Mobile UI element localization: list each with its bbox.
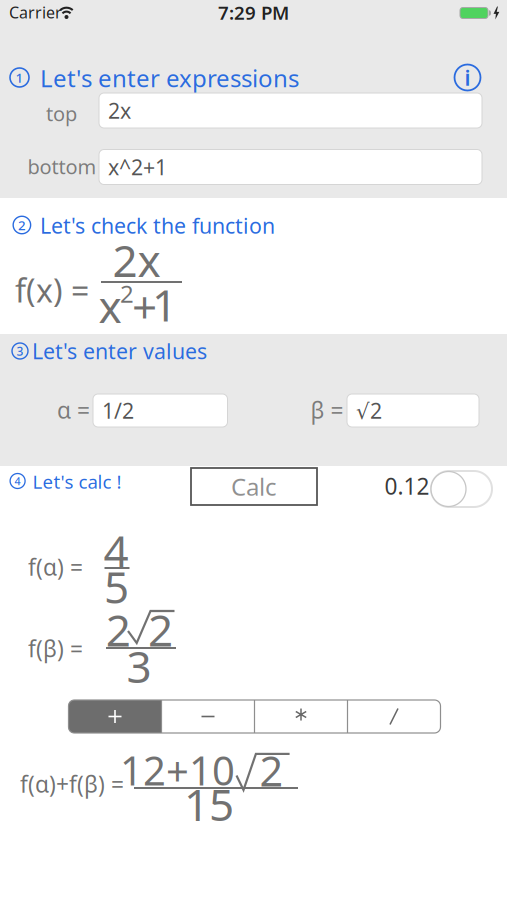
button[interactable]: Add	[68, 700, 161, 733]
staticText: α =	[57, 395, 90, 425]
staticText: Let's calc !	[32, 469, 121, 494]
staticText: 3	[126, 637, 151, 695]
button[interactable]: Decimal result	[431, 471, 492, 507]
staticText: +	[132, 277, 157, 336]
staticText: 15	[184, 775, 234, 833]
button[interactable]: Info	[454, 64, 481, 91]
staticText: f(x) =	[15, 269, 89, 311]
staticText: 4	[15, 474, 21, 488]
staticText: f(α) =	[28, 552, 83, 582]
staticText: 4	[103, 521, 128, 580]
button[interactable]: x^2+1	[99, 149, 482, 184]
staticText: i	[464, 63, 470, 92]
staticText: 0.12	[384, 471, 429, 501]
staticText: 2	[148, 600, 173, 659]
button[interactable]: 2x	[99, 93, 482, 128]
staticText: f(β) =	[28, 633, 83, 663]
staticText: 12+10	[120, 743, 235, 796]
staticText: bottom	[27, 153, 96, 180]
button[interactable]: Divide	[347, 700, 440, 733]
staticText: Calc	[231, 471, 277, 502]
button[interactable]: 1/2	[93, 394, 227, 427]
staticText: 2	[120, 278, 134, 309]
staticText: 3	[16, 343, 23, 359]
staticText: 2x	[112, 231, 160, 289]
staticText: 1	[152, 275, 177, 334]
staticText: 2	[259, 743, 283, 798]
staticText: 7:29 PM	[218, 0, 289, 25]
staticText: 1	[15, 69, 23, 86]
staticText: 5	[104, 557, 129, 616]
button[interactable]: Subtract	[161, 700, 254, 733]
button[interactable]: Calc	[191, 468, 317, 505]
button[interactable]: √2	[347, 394, 479, 427]
staticText: 2	[18, 216, 26, 234]
staticText: f(α)+f(β) =	[20, 769, 124, 799]
staticText: Carrier	[9, 2, 62, 23]
staticText: β =	[310, 395, 343, 425]
staticText: top	[46, 100, 77, 127]
staticText: Let's enter values	[32, 337, 207, 365]
staticText: 2x	[108, 96, 131, 125]
staticText: x	[98, 277, 121, 335]
staticText: Let's check the function	[40, 211, 275, 240]
staticText: Let's enter expressions	[40, 62, 299, 94]
staticText: x^2+1	[108, 153, 167, 181]
button[interactable]: Multiply	[254, 698, 347, 731]
staticText: 1/2	[102, 396, 134, 425]
staticText: √2	[356, 396, 382, 425]
staticText: 2	[106, 600, 131, 659]
